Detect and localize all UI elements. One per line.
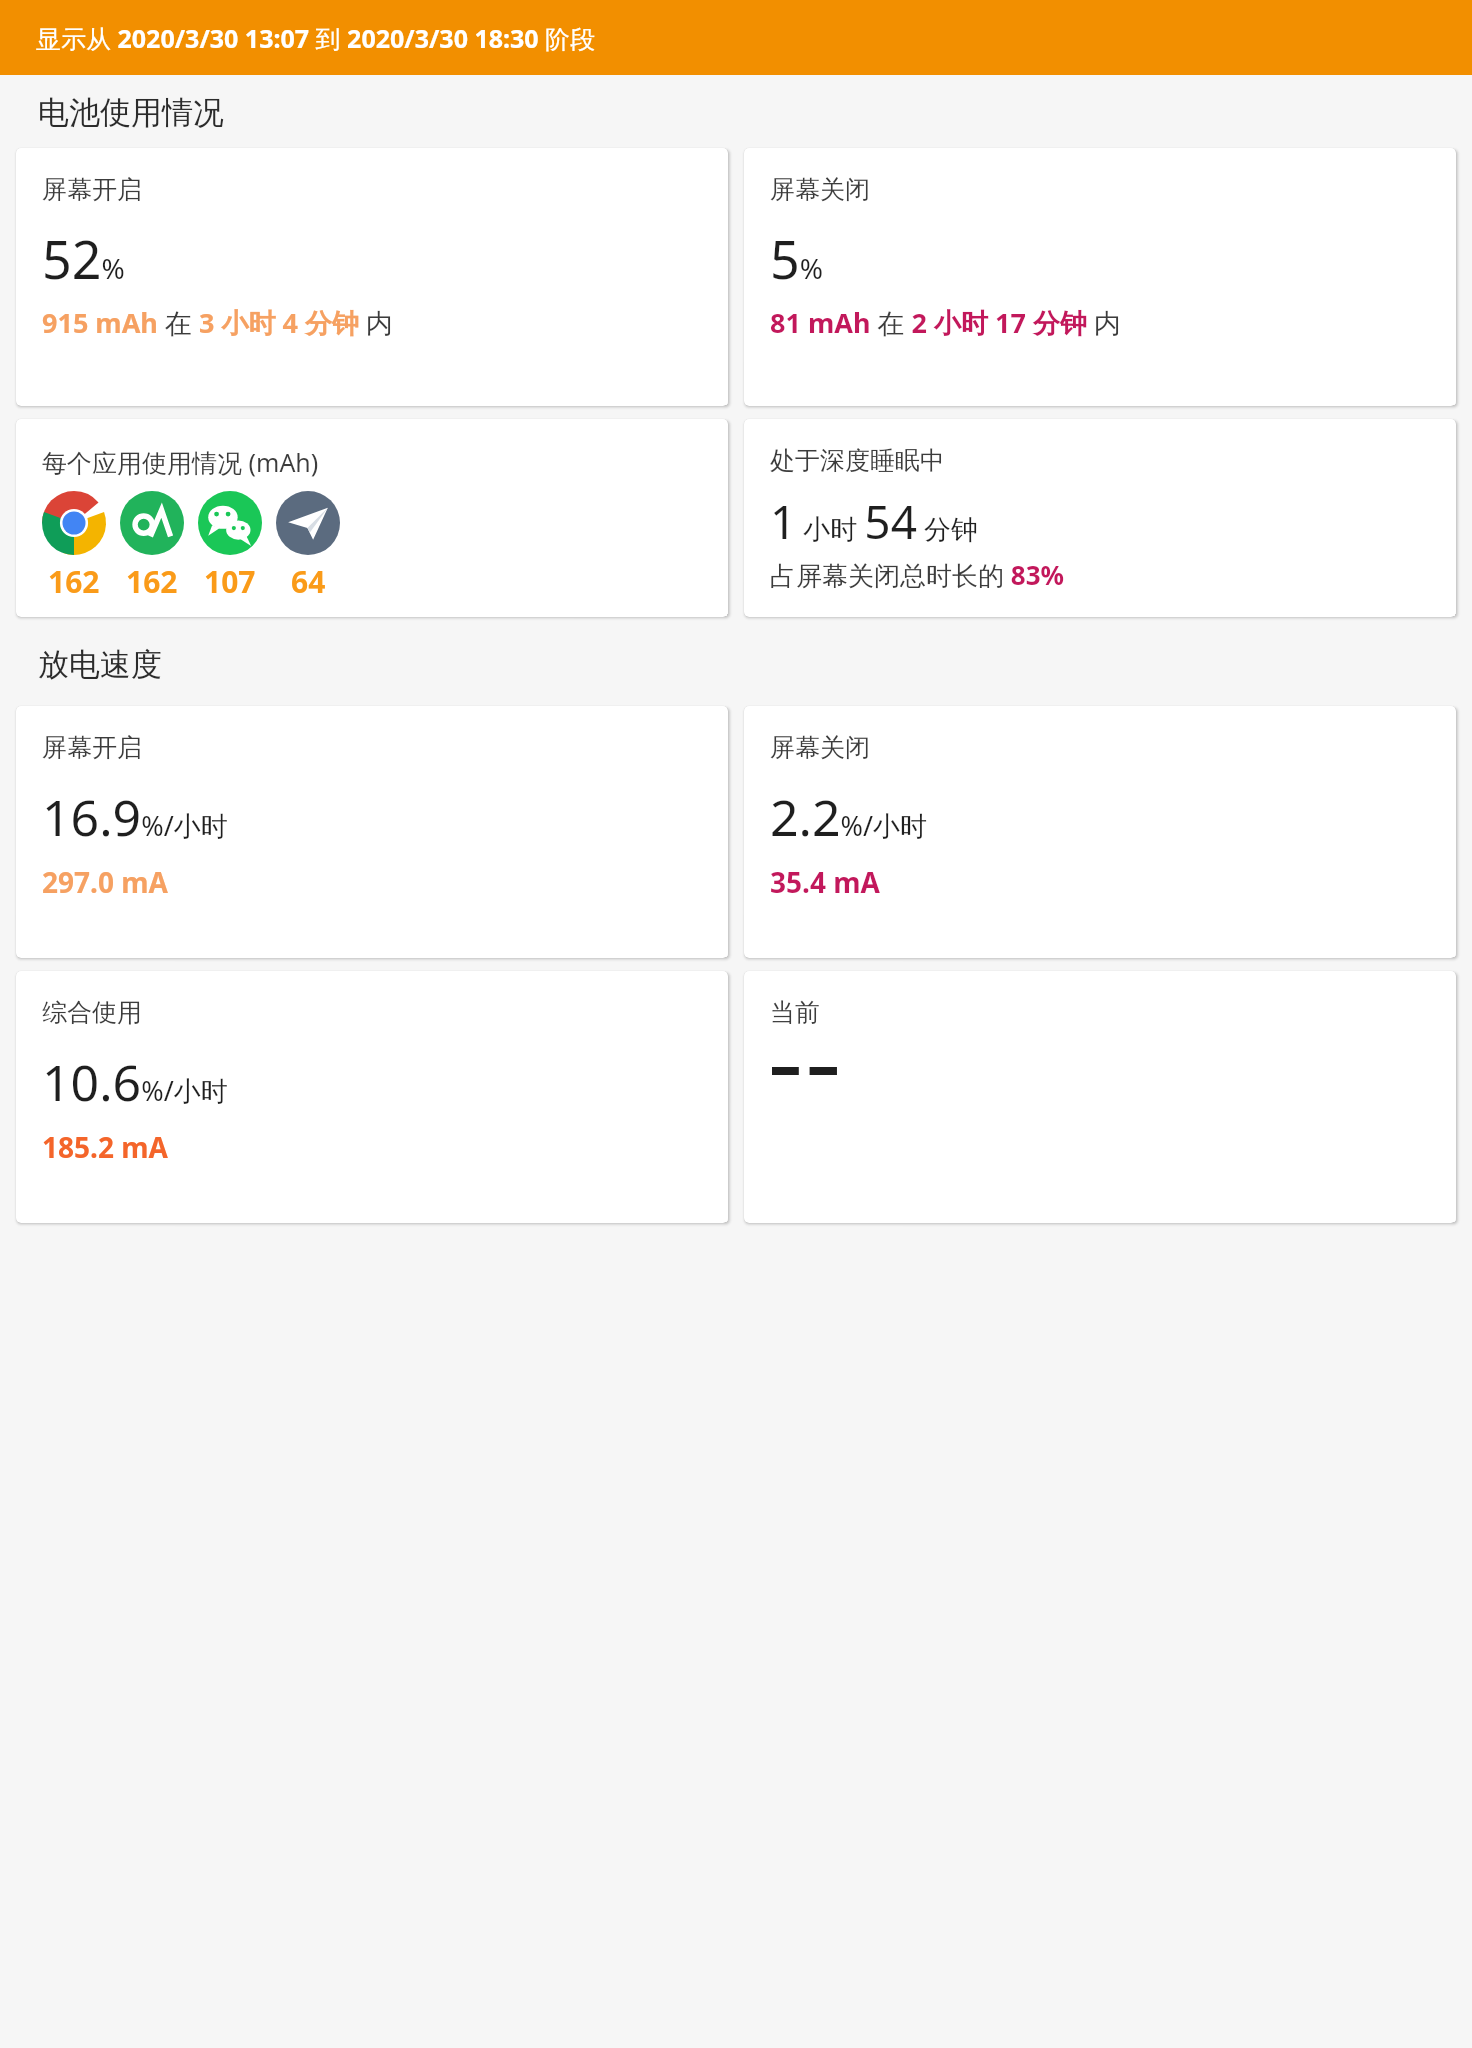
staticText: 2.2%/小时 (770, 783, 928, 851)
staticText: 处于深度睡眠中 (770, 445, 945, 476)
staticText: 电池使用情况 (38, 93, 224, 132)
other: Telegram (276, 491, 340, 555)
staticText: 显示从 2020/3/30 13:07 到 2020/3/30 18:30 阶段 (36, 21, 596, 55)
button[interactable]: 屏幕关闭 (744, 148, 1456, 406)
button[interactable]: 屏幕开启 (16, 148, 728, 406)
staticText: 5% (770, 223, 824, 294)
other: WeChat (198, 491, 262, 555)
staticText: 综合使用 (42, 997, 142, 1028)
staticText: 屏幕开启 (42, 174, 142, 205)
staticText: 每个应用使用情况 (mAh) (42, 445, 319, 479)
other: CA app (120, 491, 184, 555)
staticText: 放电速度 (38, 645, 162, 684)
button[interactable]: 屏幕关闭 (744, 706, 1456, 958)
other: Chrome (42, 491, 106, 555)
button[interactable]: 每个应用使用情况 (mAh) (16, 419, 728, 617)
staticText: 屏幕关闭 (770, 174, 870, 205)
staticText: 162 (126, 561, 178, 602)
staticText: 屏幕关闭 (770, 732, 870, 763)
button[interactable]: 处于深度睡眠中 (744, 419, 1456, 617)
staticText: 16.9%/小时 (42, 783, 228, 851)
staticText: 64 (291, 561, 326, 602)
button[interactable]: 综合使用 (16, 971, 728, 1223)
button[interactable]: 屏幕开启 (16, 706, 728, 958)
staticText: 107 (204, 561, 256, 602)
staticText: 162 (48, 561, 100, 602)
staticText: 81 mAh 在 2 小时 17 分钟 内 (770, 304, 1121, 341)
staticText: 35.4 mA (770, 863, 880, 901)
staticText: 当前 (770, 997, 820, 1028)
staticText: 185.2 mA (42, 1128, 168, 1166)
staticText: 915 mAh 在 3 小时 4 分钟 内 (42, 304, 393, 341)
staticText: 10.6%/小时 (42, 1048, 228, 1116)
staticText: 占屏幕关闭总时长的 83% (770, 557, 1064, 593)
button[interactable]: 当前 (744, 971, 1456, 1223)
staticText: 297.0 mA (42, 863, 168, 901)
button[interactable]: 显示从 2020/3/30 13:07 到 2020/3/30 18:30 阶段 (0, 0, 1472, 75)
staticText: 1 小时 54 分钟 (770, 490, 978, 553)
staticText: 屏幕开启 (42, 732, 142, 763)
staticText: 52% (42, 223, 125, 294)
